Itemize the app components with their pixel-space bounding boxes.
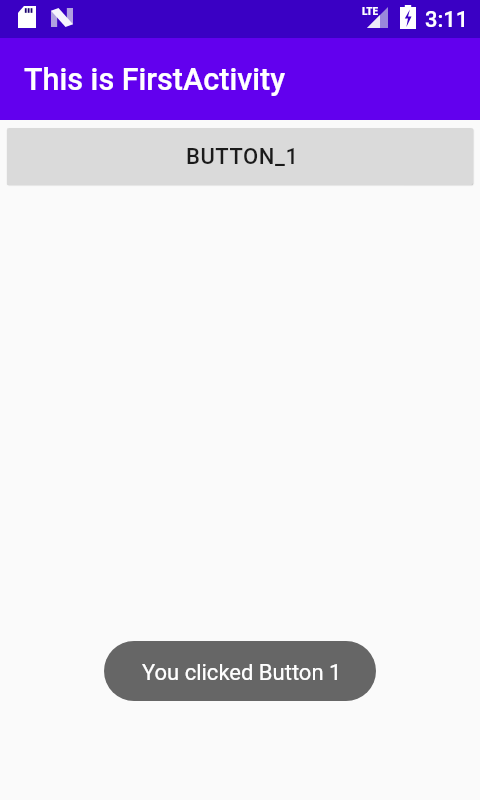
button[interactable]: BUTTON_1 bbox=[7, 128, 473, 185]
staticText: 3:11 bbox=[425, 7, 469, 33]
staticText: BUTTON_1 bbox=[186, 144, 299, 170]
staticText: This is FirstActivity bbox=[24, 62, 286, 98]
staticText: LTE bbox=[362, 4, 379, 17]
staticText: You clicked Button 1 bbox=[142, 660, 342, 686]
